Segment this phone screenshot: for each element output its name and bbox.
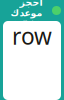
staticText: row [12,21,52,51]
staticText: خدمات الكترونية [13,19,38,24]
staticText: احجز موعدك [10,0,42,18]
